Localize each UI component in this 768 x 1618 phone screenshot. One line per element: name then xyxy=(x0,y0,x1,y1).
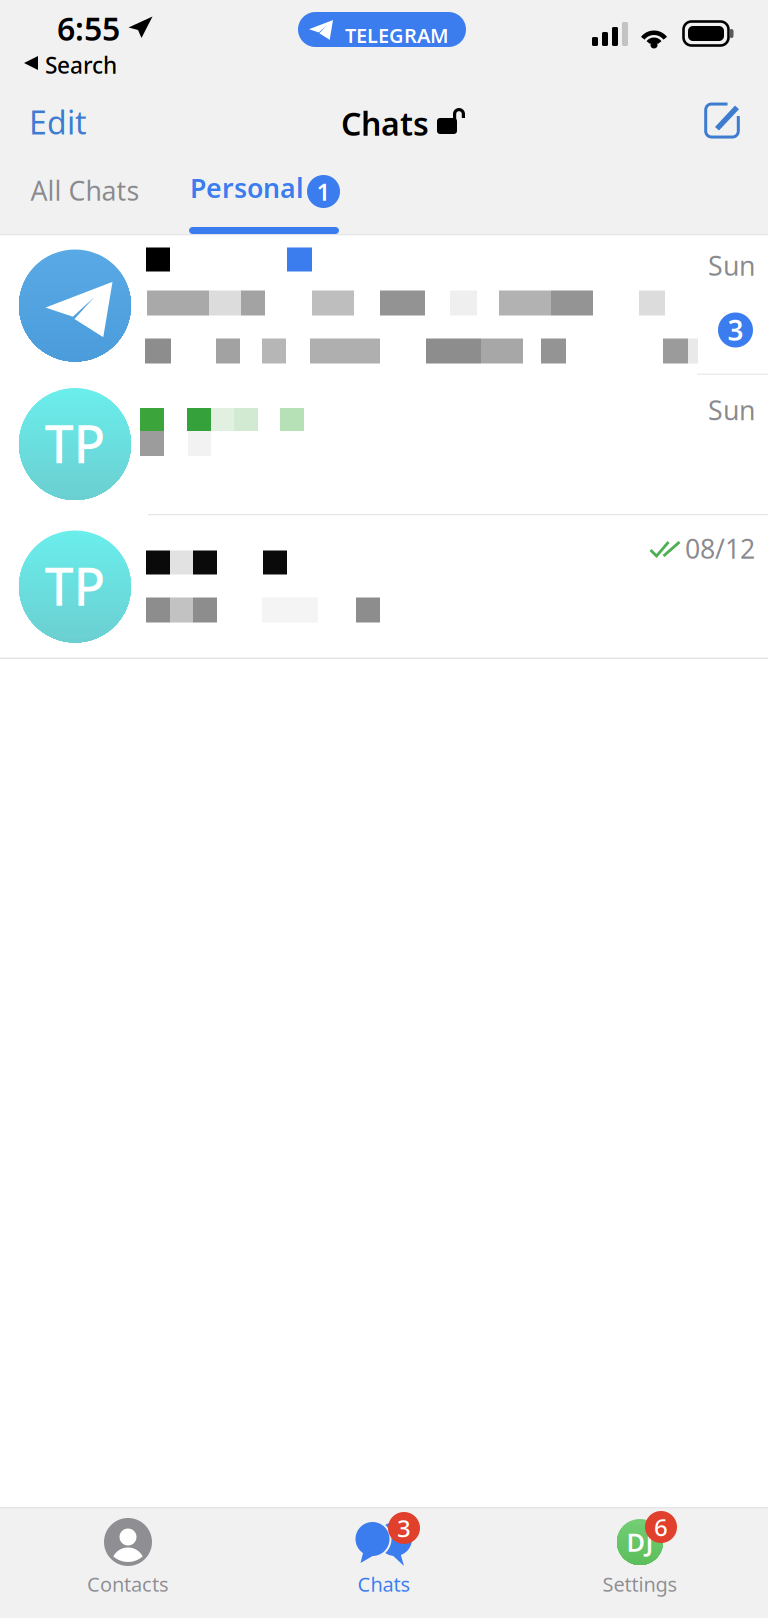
staticText: TP xyxy=(44,551,105,620)
staticText: 6 xyxy=(654,1511,668,1543)
button[interactable]: DJ xyxy=(512,1507,768,1617)
staticText: Sun xyxy=(708,248,755,283)
staticText: 08/12 xyxy=(685,531,755,566)
staticText: 1 xyxy=(316,176,330,207)
staticText: Chats xyxy=(357,1571,410,1597)
button[interactable]: Sun xyxy=(0,235,768,373)
staticText: 3 xyxy=(727,311,743,349)
staticText: Edit xyxy=(29,101,87,143)
staticText: TP xyxy=(44,408,105,478)
button[interactable]: Personal xyxy=(190,160,357,223)
button[interactable]: Edit xyxy=(0,92,113,152)
staticText: Personal xyxy=(190,170,304,205)
staticText: Contacts xyxy=(87,1571,169,1597)
staticText: TELEGRAM xyxy=(345,22,449,49)
staticText: Settings xyxy=(602,1571,677,1597)
staticText: Sun xyxy=(708,392,755,428)
staticText: Chats xyxy=(341,102,429,144)
staticText: All Chats xyxy=(30,173,139,208)
button[interactable]: New Message xyxy=(690,88,755,153)
button[interactable]: 3 xyxy=(256,1507,512,1617)
button[interactable]: Contacts xyxy=(0,1507,256,1617)
button[interactable]: All Chats xyxy=(1,163,169,218)
button[interactable]: TP xyxy=(0,375,768,514)
button[interactable]: TP xyxy=(0,515,768,657)
staticText: 3 xyxy=(397,1512,411,1544)
staticText: 6:55 xyxy=(57,7,120,49)
staticText: DJ xyxy=(626,1525,653,1559)
staticText: Search xyxy=(45,50,117,80)
